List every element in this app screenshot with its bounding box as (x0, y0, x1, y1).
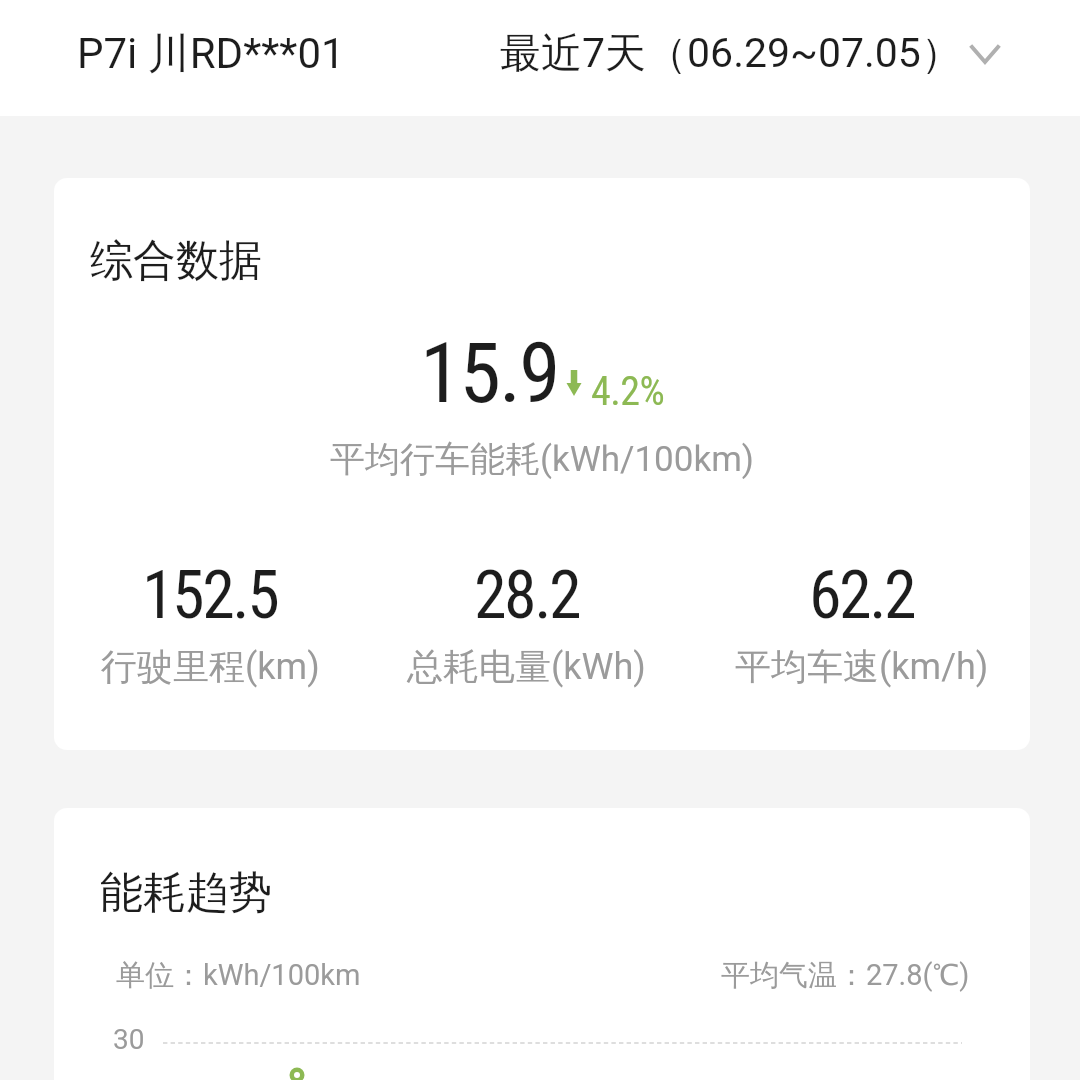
button[interactable]: 能耗趋势 (54, 808, 1030, 1080)
button[interactable]: 综合数据 (54, 178, 1030, 750)
staticText: 能耗趋势 (100, 866, 272, 920)
other: Change date range (970, 45, 1000, 64)
staticText: 行驶里程(km) (101, 644, 320, 689)
staticText: 单位：kWh/100km (116, 957, 361, 994)
button[interactable]: 最近7天（06.29~07.05） (488, 14, 1080, 94)
staticText: P7i 川RD***01 (77, 28, 345, 81)
staticText: 62.2 (809, 557, 915, 634)
staticText: 4.2% (591, 368, 665, 415)
staticText: 平均气温：27.8(℃) (721, 957, 970, 994)
staticText: 28.2 (474, 557, 580, 634)
staticText: 总耗电量(kWh) (407, 644, 646, 689)
staticText: 平均行车能耗(kWh/100km) (54, 437, 1030, 481)
staticText: 15.9 (420, 324, 559, 404)
staticText: 152.5 (142, 557, 278, 634)
staticText: 最近7天（06.29~07.05） (500, 28, 962, 80)
staticText: 30 (113, 1023, 145, 1056)
staticText: 平均车速(km/h) (735, 644, 989, 689)
staticText: 综合数据 (90, 234, 262, 288)
other: Decreased (566, 370, 582, 396)
